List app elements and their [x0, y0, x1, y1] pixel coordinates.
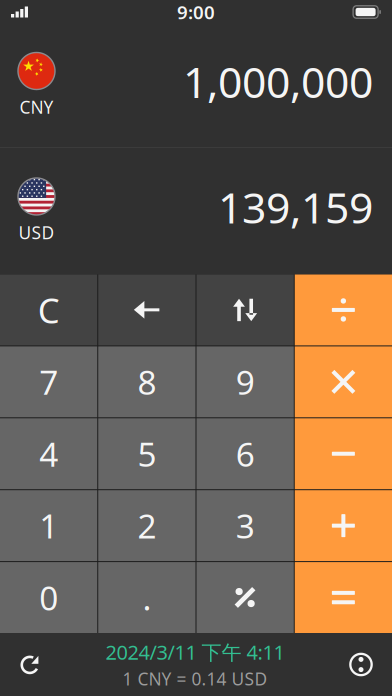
button[interactable]: 8 [98, 346, 195, 417]
button[interactable]: 2 [98, 490, 195, 561]
staticText: CNY [19, 95, 53, 118]
button[interactable]: CNY [0, 53, 73, 117]
button[interactable]: 9 [196, 346, 294, 417]
button[interactable]: Add [295, 490, 392, 561]
button[interactable]: Multiply [295, 346, 392, 417]
staticText: 5 [137, 432, 156, 476]
button[interactable]: Subtract [295, 418, 392, 489]
staticText: 9:00 [177, 0, 215, 24]
button[interactable]: 6 [196, 418, 294, 489]
button[interactable]: Swap currencies [196, 274, 294, 345]
button[interactable]: 7 [0, 346, 97, 417]
button[interactable]: 3 [196, 490, 294, 561]
button[interactable]: 5 [98, 418, 195, 489]
staticText: 1 [39, 503, 58, 548]
staticText: 1 CNY = 0.14 USD [122, 667, 267, 690]
staticText: 2024/3/11 下午 4:11 [105, 639, 284, 665]
button[interactable]: C [0, 274, 97, 345]
button[interactable]: Equals [295, 562, 392, 633]
staticText: USD [18, 221, 54, 244]
button[interactable]: Percent [196, 562, 294, 633]
staticText: 7 [39, 360, 58, 404]
staticText: 139,159 [218, 179, 373, 235]
staticText: 6 [236, 432, 255, 476]
staticText: 1,000,000 [183, 53, 373, 110]
button[interactable]: USD [0, 179, 73, 243]
staticText: 2 [137, 503, 156, 548]
button[interactable]: 1 [0, 490, 97, 561]
button[interactable]: 4 [0, 418, 97, 489]
staticText: 4 [39, 432, 58, 476]
button[interactable]: 0 [0, 562, 97, 633]
staticText: 3 [236, 503, 255, 548]
staticText: 0 [39, 575, 58, 620]
button[interactable]: More options [330, 633, 392, 696]
staticText: . [142, 575, 151, 620]
button[interactable]: Refresh rates [0, 633, 60, 696]
button[interactable]: Divide [295, 274, 392, 345]
staticText: C [38, 287, 60, 333]
staticText: 8 [137, 360, 156, 404]
staticText: 9 [236, 360, 255, 404]
button[interactable]: Backspace [98, 274, 195, 345]
button[interactable]: . [98, 562, 195, 633]
